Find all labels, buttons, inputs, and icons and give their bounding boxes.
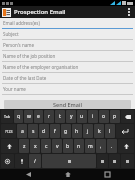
staticText: l: [109, 128, 111, 135]
button[interactable]: f: [50, 124, 60, 138]
button[interactable]: shift: [118, 139, 134, 153]
button[interactable]: emoji: [121, 154, 134, 168]
staticText: t: [59, 113, 61, 120]
staticText: u: [80, 113, 84, 120]
staticText: Email address(es): [3, 20, 40, 26]
button[interactable]: h: [72, 124, 82, 138]
staticText: d: [42, 128, 46, 135]
staticText: Prospection Email: [14, 8, 66, 16]
staticText: Name of the employer organisation: [3, 64, 79, 70]
staticText: w: [27, 113, 31, 120]
button[interactable]: Email address(es): [0, 18, 135, 29]
button[interactable]: p: [110, 110, 120, 123]
staticText: q: [17, 113, 21, 120]
button[interactable]: l: [97, 154, 108, 168]
staticText: z: [23, 143, 26, 150]
button[interactable]: m: [85, 139, 95, 153]
staticText: c: [45, 143, 48, 150]
staticText: n: [77, 143, 81, 150]
staticText: i: [92, 113, 94, 120]
button[interactable]: x: [30, 139, 40, 153]
staticText: ,: [100, 143, 102, 150]
button[interactable]: g: [61, 124, 71, 138]
button[interactable]: Name of the job position: [0, 51, 135, 62]
button[interactable]: mic: [15, 154, 28, 168]
button[interactable]: q: [14, 110, 23, 123]
button[interactable]: Your name: [0, 84, 135, 95]
button[interactable]: r: [44, 110, 54, 123]
button[interactable]: Person's name: [0, 40, 135, 51]
button[interactable]: s: [28, 124, 38, 138]
button[interactable]: shift: [1, 139, 18, 153]
button[interactable]: l: [105, 124, 115, 138]
button[interactable]: Tab: [1, 110, 13, 123]
button[interactable]: a: [17, 124, 27, 138]
button[interactable]: ?123: [1, 124, 16, 138]
staticText: p: [113, 113, 117, 120]
button[interactable]: enter: [116, 124, 134, 138]
button[interactable]: n: [74, 139, 84, 153]
staticText: x: [34, 143, 37, 150]
staticText: m: [88, 143, 93, 150]
staticText: h: [75, 128, 79, 135]
button[interactable]: b: [63, 139, 73, 153]
staticText: .: [111, 143, 113, 150]
staticText: /: [34, 158, 36, 165]
staticText: r: [48, 113, 51, 120]
button[interactable]: del: [121, 110, 134, 123]
button[interactable]: c: [41, 139, 51, 153]
staticText: f: [54, 128, 56, 135]
button[interactable]: Home: [57, 169, 79, 180]
button[interactable]: .: [107, 139, 117, 153]
staticText: Name of the job position: [3, 53, 56, 59]
staticText: Subject: [3, 31, 19, 37]
button[interactable]: Recent apps: [96, 169, 118, 180]
button[interactable]: ctrl: [1, 154, 14, 168]
staticText: k: [98, 128, 101, 135]
staticText: j: [87, 128, 89, 135]
staticText: b: [66, 143, 70, 150]
button[interactable]: z: [19, 139, 29, 153]
staticText: o: [102, 113, 106, 120]
button[interactable]: i: [88, 110, 98, 123]
staticText: Tab: [4, 114, 10, 119]
button[interactable]: d: [39, 124, 49, 138]
staticText: g: [64, 128, 68, 135]
staticText: Send Email: [53, 101, 82, 108]
button[interactable]: o: [99, 110, 109, 123]
button[interactable]: u: [77, 110, 87, 123]
button[interactable]: j: [83, 124, 93, 138]
button[interactable]: [42, 154, 96, 168]
button[interactable]: Subject: [0, 29, 135, 40]
staticText: Date of the last Date: [3, 75, 47, 81]
button[interactable]: Date of the last Date: [0, 73, 135, 84]
button[interactable]: k: [94, 124, 104, 138]
staticText: e: [37, 113, 40, 120]
staticText: a: [21, 128, 24, 135]
staticText: ?123: [5, 129, 13, 134]
staticText: s: [32, 128, 35, 135]
button[interactable]: Back: [17, 169, 39, 180]
button[interactable]: w: [24, 110, 33, 123]
staticText: Person's name: [3, 42, 34, 48]
staticText: v: [56, 143, 59, 150]
staticText: Your name: [3, 86, 26, 92]
button[interactable]: More options: [125, 6, 133, 18]
button[interactable]: t: [55, 110, 65, 123]
button[interactable]: Send Email: [4, 100, 131, 109]
button[interactable]: ,: [96, 139, 106, 153]
button[interactable]: r: [109, 154, 120, 168]
staticText: y: [70, 113, 73, 120]
button[interactable]: e: [34, 110, 43, 123]
button[interactable]: Name of the employer organisation: [0, 62, 135, 73]
button[interactable]: /: [29, 154, 41, 168]
button[interactable]: v: [52, 139, 62, 153]
button[interactable]: y: [66, 110, 76, 123]
